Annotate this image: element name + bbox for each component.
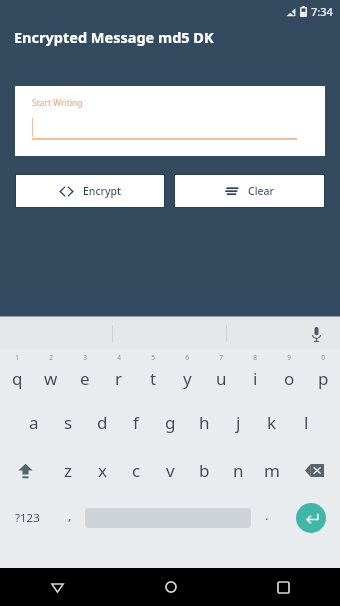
button[interactable]: z xyxy=(51,446,85,494)
staticText: z xyxy=(64,459,72,482)
staticText: j xyxy=(236,411,241,434)
staticText: Encrypt xyxy=(83,184,122,198)
staticText: f xyxy=(133,411,139,434)
staticText: b xyxy=(199,459,210,482)
button[interactable]: s xyxy=(51,398,85,446)
button[interactable]: m xyxy=(255,446,289,494)
staticText: m xyxy=(264,459,280,482)
staticText: d xyxy=(97,411,108,434)
staticText: p xyxy=(318,367,329,390)
button[interactable]: 1 xyxy=(0,350,34,398)
button[interactable]: x xyxy=(85,446,119,494)
button[interactable]: Enter xyxy=(282,494,340,542)
staticText: 4 xyxy=(117,353,121,362)
button[interactable]: f xyxy=(119,398,153,446)
staticText: 1 xyxy=(15,353,19,362)
button[interactable]: n xyxy=(221,446,255,494)
staticText: . xyxy=(265,506,269,524)
staticText: y xyxy=(183,367,192,390)
button[interactable]: j xyxy=(221,398,255,446)
staticText: Start Writing xyxy=(32,97,83,109)
button[interactable]: Voice input xyxy=(305,323,327,345)
button[interactable]: 0 xyxy=(306,350,340,398)
button[interactable]: Start Writing xyxy=(15,86,325,156)
staticText: , xyxy=(68,506,72,524)
staticText: 3 xyxy=(83,353,87,362)
staticText: 2 xyxy=(49,353,53,362)
button[interactable]: 6 xyxy=(170,350,204,398)
button[interactable]: 2 xyxy=(34,350,68,398)
button[interactable]: d xyxy=(85,398,119,446)
staticText: n xyxy=(233,459,244,482)
staticText: r xyxy=(115,367,123,390)
button[interactable]: Back xyxy=(0,568,114,606)
staticText: g xyxy=(165,411,176,434)
staticText: u xyxy=(216,367,227,390)
button[interactable]: 3 xyxy=(68,350,102,398)
staticText: e xyxy=(80,367,90,390)
staticText: t xyxy=(150,367,157,390)
staticText: a xyxy=(29,411,39,434)
staticText: 7 xyxy=(219,353,223,362)
button[interactable]: g xyxy=(153,398,187,446)
staticText: o xyxy=(284,367,295,390)
button[interactable]: v xyxy=(153,446,187,494)
staticText: q xyxy=(12,367,23,390)
button[interactable]: b xyxy=(187,446,221,494)
staticText: 5 xyxy=(151,353,155,362)
staticText: 6 xyxy=(185,353,189,362)
staticText: c xyxy=(132,459,141,482)
button[interactable]: Clear xyxy=(175,175,324,207)
button[interactable]: Recents xyxy=(227,568,340,606)
staticText: Clear xyxy=(248,184,274,198)
button[interactable]: ?123 xyxy=(0,494,54,542)
button[interactable]: k xyxy=(255,398,289,446)
staticText: w xyxy=(44,367,58,390)
staticText: x xyxy=(98,459,107,482)
button[interactable]: Shift xyxy=(0,446,51,494)
staticText: s xyxy=(64,411,73,434)
button[interactable]: Home xyxy=(114,568,227,606)
button[interactable]: l xyxy=(289,398,323,446)
button[interactable]: . xyxy=(251,494,282,542)
staticText: Encrypted Message md5 DK xyxy=(14,27,214,47)
button[interactable]: c xyxy=(119,446,153,494)
button[interactable]: h xyxy=(187,398,221,446)
staticText: 8 xyxy=(253,353,257,362)
button[interactable]: 9 xyxy=(272,350,306,398)
staticText: ?123 xyxy=(15,510,40,526)
button[interactable]: Encrypt xyxy=(16,175,164,207)
button[interactable]: a xyxy=(17,398,51,446)
button[interactable]: 5 xyxy=(136,350,170,398)
staticText: 9 xyxy=(287,353,291,362)
staticText: l xyxy=(304,411,309,434)
staticText: v xyxy=(166,459,175,482)
button[interactable]: 4 xyxy=(102,350,136,398)
staticText: 7:34 xyxy=(311,4,333,19)
staticText: 0 xyxy=(321,353,325,362)
button[interactable]: Backspace xyxy=(289,446,340,494)
staticText: h xyxy=(199,411,210,434)
button[interactable]: 8 xyxy=(238,350,272,398)
staticText: k xyxy=(267,411,277,434)
staticText: i xyxy=(253,367,258,390)
button[interactable]: , xyxy=(54,494,85,542)
button[interactable]: 7 xyxy=(204,350,238,398)
